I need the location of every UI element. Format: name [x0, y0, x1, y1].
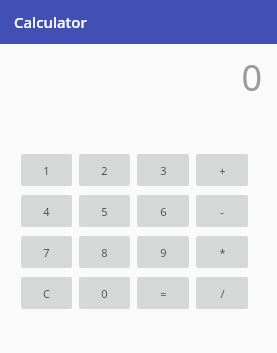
button[interactable]: 1 [21, 154, 72, 186]
staticText: - [220, 204, 224, 219]
staticText: 6 [160, 204, 167, 219]
button[interactable]: 8 [79, 236, 130, 268]
button[interactable]: * [196, 236, 248, 268]
button[interactable]: 0 [79, 277, 130, 309]
button[interactable]: C [21, 277, 72, 309]
button[interactable]: + [196, 154, 248, 186]
button[interactable]: 3 [137, 154, 189, 186]
button[interactable]: - [196, 195, 248, 227]
button[interactable]: 6 [137, 195, 189, 227]
staticText: 3 [160, 163, 167, 178]
staticText: 5 [101, 204, 108, 219]
staticText: + [219, 163, 226, 178]
button[interactable]: / [196, 277, 248, 309]
staticText: 9 [160, 245, 167, 260]
staticText: 8 [101, 245, 108, 260]
button[interactable]: = [137, 277, 189, 309]
staticText: * [219, 245, 226, 260]
staticText: = [160, 286, 167, 301]
staticText: / [220, 286, 225, 301]
staticText: 0 [101, 286, 108, 301]
button[interactable]: 2 [79, 154, 130, 186]
staticText: 0 [241, 53, 262, 102]
staticText: 7 [43, 245, 50, 260]
staticText: Calculator [14, 12, 87, 32]
staticText: 1 [43, 163, 50, 178]
button[interactable]: 9 [137, 236, 189, 268]
staticText: C [43, 286, 50, 301]
staticText: 2 [101, 163, 108, 178]
button[interactable]: 4 [21, 195, 72, 227]
button[interactable]: 7 [21, 236, 72, 268]
staticText: 4 [43, 204, 50, 219]
button[interactable]: 5 [79, 195, 130, 227]
